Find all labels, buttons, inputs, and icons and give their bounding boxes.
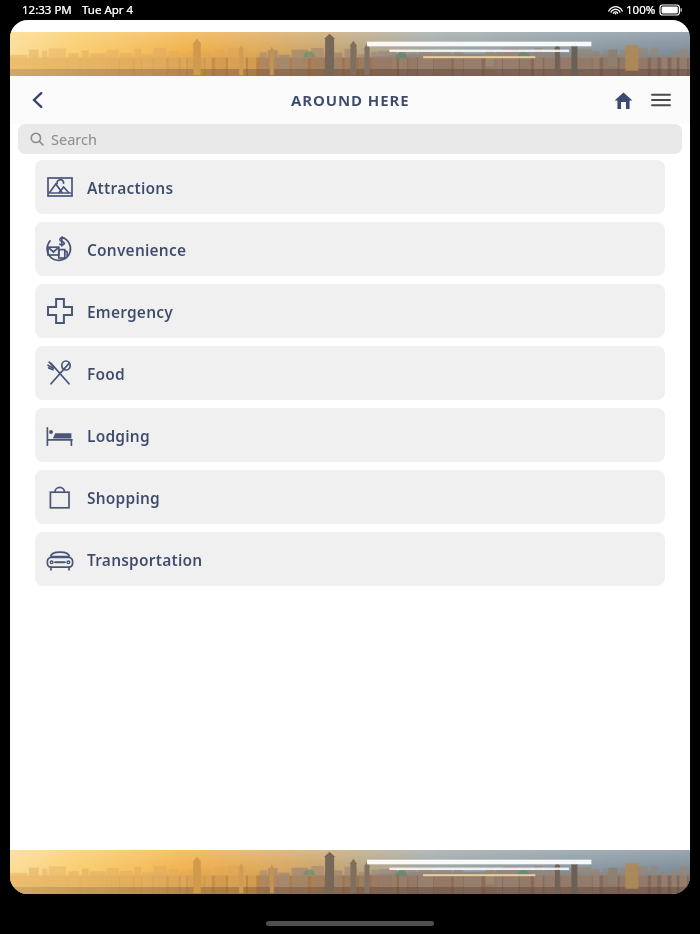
- button[interactable]: Shopping: [35, 470, 665, 524]
- staticText: Attractions: [87, 177, 174, 198]
- staticText: Search: [51, 129, 97, 149]
- staticText: AROUND HERE: [291, 90, 410, 110]
- button[interactable]: Convenience: [35, 222, 665, 276]
- button[interactable]: Transportation: [35, 532, 665, 586]
- button[interactable]: Home: [604, 81, 642, 119]
- button[interactable]: Search: [18, 124, 682, 154]
- staticText: Food: [87, 363, 125, 384]
- staticText: 12:33 PM: [22, 2, 72, 18]
- button[interactable]: Lodging: [35, 408, 665, 462]
- button[interactable]: Back: [16, 78, 60, 122]
- staticText: Shopping: [87, 487, 160, 508]
- staticText: Tue Apr 4: [82, 2, 134, 18]
- button[interactable]: Food: [35, 346, 665, 400]
- staticText: Lodging: [87, 425, 150, 446]
- staticText: Convenience: [87, 239, 187, 260]
- button[interactable]: Attractions: [35, 160, 665, 214]
- staticText: Emergency: [87, 301, 173, 322]
- button[interactable]: Emergency: [35, 284, 665, 338]
- staticText: 100%: [626, 2, 656, 18]
- staticText: Transportation: [87, 549, 203, 570]
- button[interactable]: Menu: [642, 81, 680, 119]
